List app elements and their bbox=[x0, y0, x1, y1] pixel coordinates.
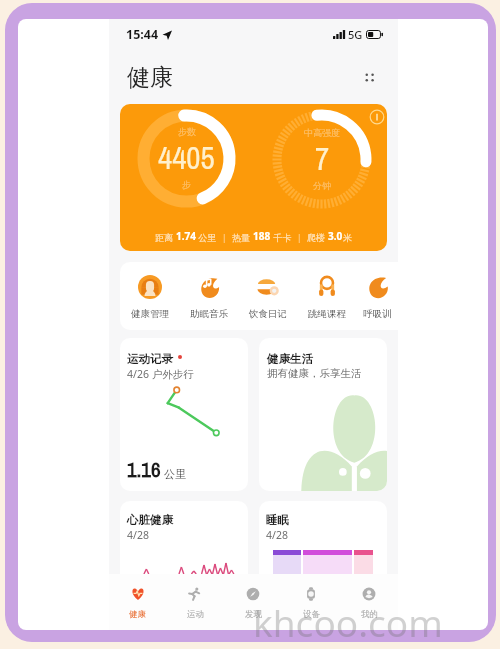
staticText: 4405 bbox=[158, 137, 215, 179]
button[interactable]: 跳绳课程 bbox=[297, 262, 356, 330]
staticText: 距离 bbox=[155, 231, 176, 243]
button[interactable]: 心脏健康 bbox=[120, 501, 248, 574]
button[interactable]: 健康管理 bbox=[120, 262, 179, 330]
staticText: 4/28 bbox=[266, 528, 288, 542]
staticText: 米 bbox=[343, 232, 352, 243]
button[interactable]: 设备 bbox=[282, 574, 340, 630]
staticText: 中高强度 bbox=[304, 127, 340, 138]
staticText: 热量 bbox=[232, 231, 253, 243]
staticText: 4/26 户外步行 bbox=[127, 367, 194, 381]
button[interactable]: More options bbox=[358, 66, 380, 88]
staticText: 步 bbox=[182, 179, 191, 190]
staticText: 发现 bbox=[245, 609, 262, 620]
staticText: 步数 bbox=[178, 126, 196, 137]
staticText: 188 bbox=[253, 229, 271, 243]
staticText: 公里 bbox=[164, 467, 186, 481]
button[interactable]: 睡眠 bbox=[259, 501, 387, 574]
staticText: 分钟 bbox=[313, 180, 331, 191]
button[interactable]: 运动 bbox=[166, 574, 224, 630]
staticText: 运动记录 bbox=[127, 352, 173, 366]
staticText: 爬楼 bbox=[307, 231, 328, 243]
staticText: 1.16 bbox=[127, 455, 161, 483]
staticText: 1.74 bbox=[176, 229, 196, 243]
staticText: 健康管理 bbox=[131, 308, 169, 320]
staticText: 我的 bbox=[361, 609, 378, 620]
staticText: 健康 bbox=[127, 63, 173, 92]
button[interactable]: 我的 bbox=[340, 574, 398, 630]
staticText: 健康 bbox=[129, 609, 146, 620]
staticText: 15:44 bbox=[126, 26, 159, 43]
staticText: 呼吸训 bbox=[363, 308, 392, 320]
staticText: 公里 bbox=[196, 231, 217, 243]
staticText: 设备 bbox=[303, 609, 320, 620]
staticText: 7 bbox=[315, 138, 330, 180]
staticText: 健康生活 bbox=[267, 352, 313, 366]
button[interactable]: 健康生活 bbox=[259, 338, 387, 491]
button[interactable]: 呼吸训 bbox=[356, 262, 398, 330]
staticText: 心脏健康 bbox=[127, 513, 173, 527]
button[interactable]: 助眠音乐 bbox=[179, 262, 238, 330]
staticText: | bbox=[217, 231, 232, 243]
button[interactable]: Info bbox=[369, 109, 385, 125]
staticText: 睡眠 bbox=[266, 513, 289, 527]
staticText: 千卡 bbox=[271, 231, 292, 243]
staticText: 跳绳课程 bbox=[308, 308, 346, 320]
button[interactable]: 运动记录 bbox=[120, 338, 248, 491]
staticText: khcoo.com bbox=[253, 597, 443, 647]
staticText: | bbox=[292, 231, 307, 243]
button[interactable]: 健康 bbox=[109, 574, 166, 630]
staticText: 3.0 bbox=[328, 229, 343, 243]
staticText: 4/28 bbox=[127, 528, 149, 542]
staticText: 运动 bbox=[187, 609, 204, 620]
staticText: 5G bbox=[348, 27, 363, 42]
button[interactable]: 饮食日记 bbox=[238, 262, 297, 330]
staticText: 拥有健康，乐享生活 bbox=[267, 367, 362, 380]
button[interactable]: 发现 bbox=[224, 574, 282, 630]
staticText: 助眠音乐 bbox=[190, 308, 228, 320]
button[interactable]: 步数 bbox=[120, 104, 387, 251]
staticText: 饮食日记 bbox=[249, 308, 287, 320]
